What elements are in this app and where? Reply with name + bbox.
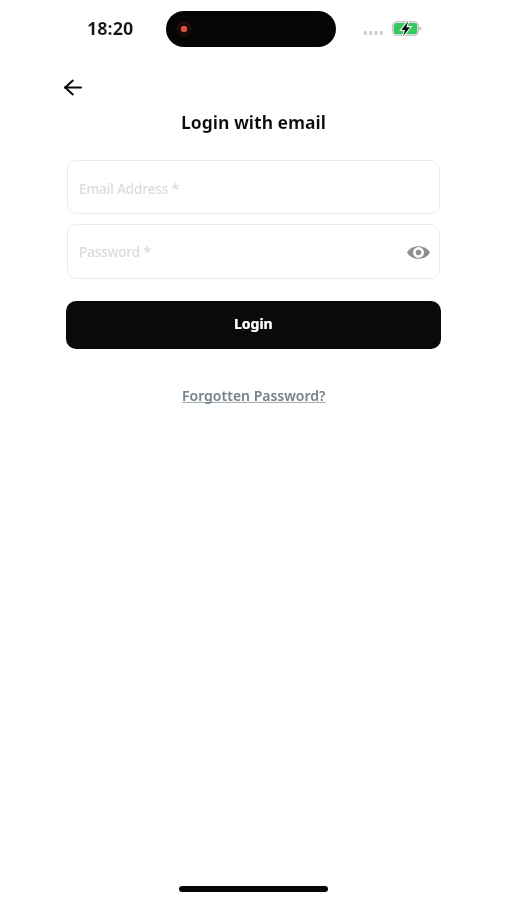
staticText: 18:20 bbox=[87, 16, 134, 41]
staticText: Forgotten Password? bbox=[182, 386, 326, 405]
button[interactable]: Show password bbox=[405, 239, 431, 265]
button[interactable]: Login bbox=[66, 301, 441, 349]
button[interactable]: Back bbox=[57, 71, 89, 103]
staticText: Password * bbox=[79, 243, 152, 261]
staticText: Email Address * bbox=[79, 180, 180, 198]
staticText: Login bbox=[234, 314, 273, 333]
button[interactable]: Forgotten Password? bbox=[178, 384, 330, 407]
button[interactable]: Email Address * bbox=[67, 160, 440, 214]
button[interactable]: Password * bbox=[67, 224, 440, 279]
staticText: Login with email bbox=[0, 110, 507, 134]
